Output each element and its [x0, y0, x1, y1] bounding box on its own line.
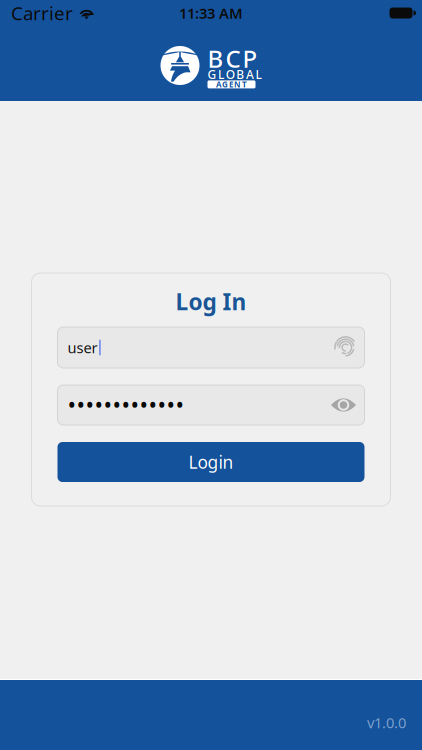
staticText: GLOBAL [207, 66, 261, 82]
staticText: Carrier [11, 1, 73, 25]
staticText: Login [188, 450, 233, 473]
staticText: 11:33 AM [179, 3, 243, 23]
button[interactable]: user [57, 327, 364, 368]
staticText: BCP [207, 43, 257, 74]
staticText: AGENT [216, 79, 247, 90]
staticText: user [67, 338, 97, 357]
staticText: Log In [175, 286, 246, 316]
staticText: v1.0.0 [367, 713, 406, 732]
button[interactable]: Login [57, 442, 364, 482]
staticText: ••••••••••••• [67, 390, 184, 420]
button[interactable]: ••••••••••••• [57, 385, 364, 425]
